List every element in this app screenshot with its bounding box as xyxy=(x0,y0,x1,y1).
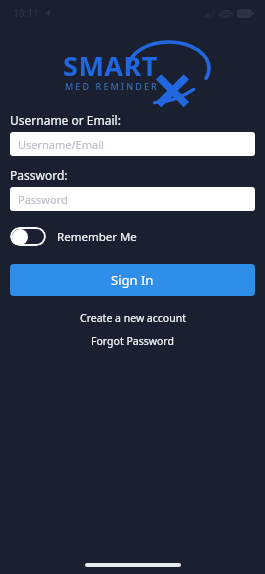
staticText: SMART xyxy=(63,47,158,84)
staticText: Create a new account xyxy=(80,311,186,325)
button[interactable]: Create a new account xyxy=(10,311,255,325)
staticText: Username/Email xyxy=(18,137,104,152)
staticText: Password: xyxy=(10,167,68,183)
staticText: Forgot Password xyxy=(91,334,174,348)
button[interactable]: Sign In xyxy=(10,264,255,296)
staticText: Password xyxy=(18,192,68,207)
button[interactable]: Username/Email xyxy=(10,132,255,156)
staticText: Username or Email: xyxy=(10,112,121,128)
staticText: 10:11 xyxy=(13,6,39,20)
button[interactable]: Remember Me xyxy=(10,225,137,248)
button[interactable]: Password xyxy=(10,187,255,211)
staticText: Sign In xyxy=(111,271,154,289)
button[interactable]: Forgot Password xyxy=(10,334,255,348)
staticText: Remember Me xyxy=(57,229,137,245)
staticText: MED REMINDER xyxy=(65,80,159,92)
